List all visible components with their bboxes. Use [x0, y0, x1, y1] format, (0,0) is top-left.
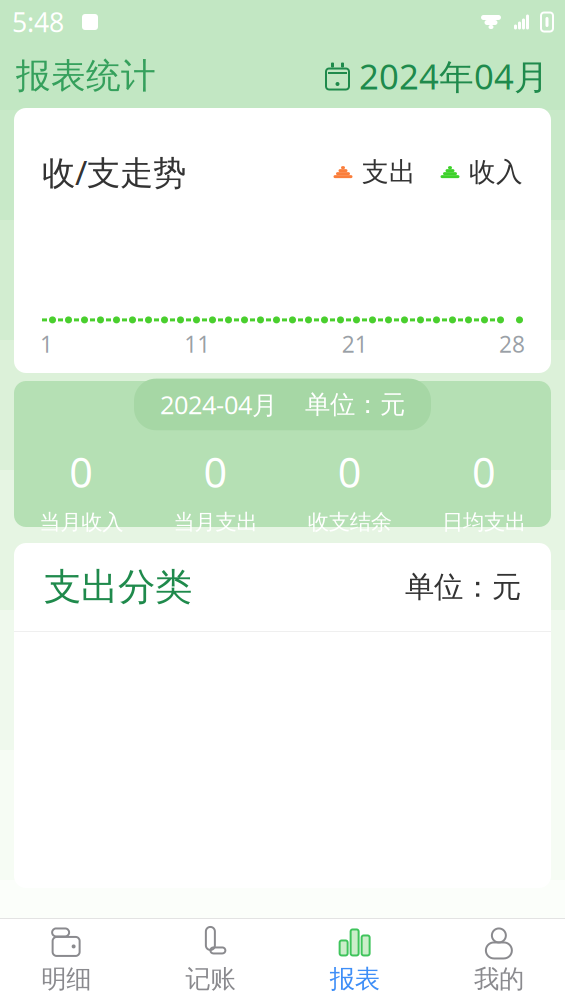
staticText: 我的: [474, 963, 524, 994]
staticText: 收/支走势: [42, 150, 186, 194]
staticText: 单位：元: [305, 389, 405, 420]
staticText: 11: [184, 329, 210, 359]
staticText: 收支结余: [308, 509, 392, 535]
staticText: 当月收入: [39, 509, 123, 535]
staticText: 支出分类: [44, 564, 192, 610]
staticText: 5:48: [12, 4, 64, 40]
staticText: 0: [69, 444, 93, 499]
button[interactable]: 报表: [282, 917, 427, 1004]
staticText: 21: [342, 329, 368, 359]
staticText: 1: [40, 329, 53, 359]
staticText: 报表: [330, 963, 380, 994]
staticText: 收入: [469, 156, 523, 189]
staticText: 记账: [185, 963, 235, 994]
staticText: 报表统计: [16, 55, 156, 97]
staticText: 日均支出: [442, 509, 526, 535]
staticText: 单位：元: [405, 569, 521, 605]
staticText: 明细: [41, 963, 91, 994]
staticText: 0: [338, 444, 362, 499]
button[interactable]: 明细: [0, 917, 138, 1004]
staticText: 支出: [362, 156, 416, 189]
staticText: 当月支出: [173, 509, 257, 535]
staticText: 2024-04月: [160, 388, 277, 421]
button[interactable]: 记账: [138, 917, 282, 1004]
staticText: 0: [203, 444, 227, 499]
button[interactable]: 2024年04月: [325, 47, 549, 105]
staticText: 28: [499, 329, 525, 359]
staticText: 0: [472, 444, 496, 499]
button[interactable]: 我的: [427, 917, 565, 1004]
staticText: 2024年04月: [359, 53, 549, 99]
